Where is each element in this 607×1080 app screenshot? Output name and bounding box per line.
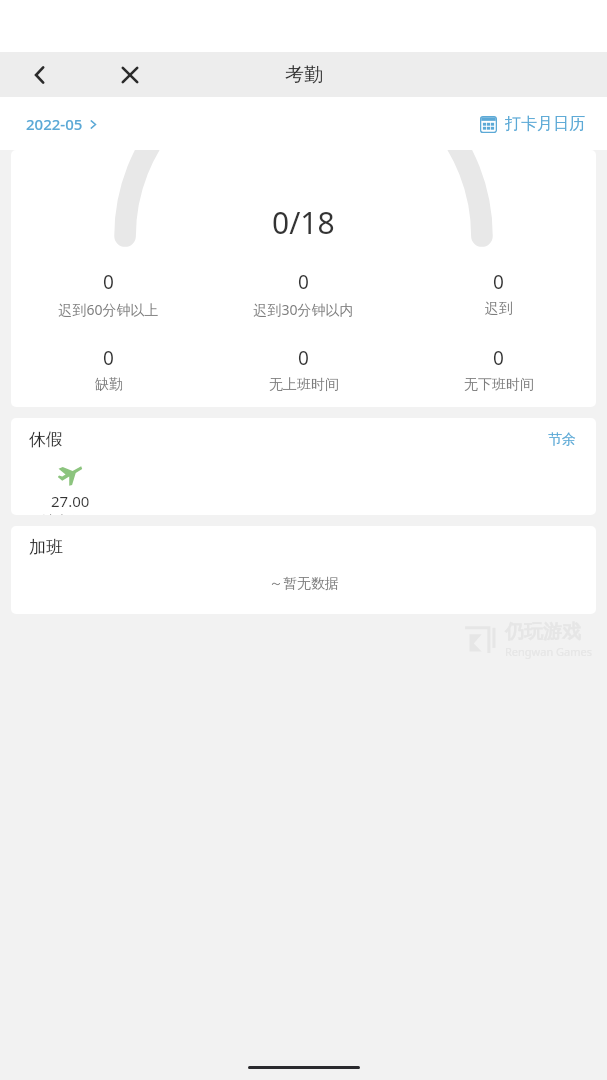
staticText: 无上班时间 <box>269 376 339 394</box>
staticText: 0 <box>103 269 114 295</box>
staticText: 休假 <box>29 429 63 450</box>
staticText: 迟到 <box>485 300 513 318</box>
button[interactable]: 2022-05 <box>20 108 104 140</box>
button[interactable]: 0 <box>11 269 206 319</box>
staticText: 2022-05 <box>26 114 83 134</box>
staticText: 打卡月日历 <box>505 114 585 134</box>
staticText: 仍玩游戏 <box>505 620 581 644</box>
staticText: 节余 <box>548 431 576 449</box>
staticText: 0 <box>298 345 309 371</box>
staticText: 0 <box>103 345 114 371</box>
staticText: ～暂无数据 <box>269 575 339 593</box>
staticText: 0 <box>493 345 504 371</box>
staticText: 迟到30分钟以内 <box>253 300 354 319</box>
staticText: 法定年假 <box>42 513 98 515</box>
button[interactable]: 0 <box>401 269 596 318</box>
button[interactable]: 0 <box>206 269 401 319</box>
staticText: 无下班时间 <box>464 376 534 394</box>
button[interactable]: Back <box>20 55 60 95</box>
staticText: 缺勤 <box>95 376 123 394</box>
staticText: 考勤 <box>285 63 323 87</box>
button[interactable]: 27.00 <box>35 461 105 515</box>
staticText: 0 <box>493 269 504 295</box>
button[interactable]: 0 <box>11 345 206 394</box>
button[interactable]: 0 <box>206 345 401 394</box>
staticText: 0 <box>298 269 309 295</box>
staticText: 0/18 <box>272 202 335 243</box>
staticText: 27.00 <box>51 491 90 511</box>
button[interactable]: Close <box>110 55 150 95</box>
staticText: 加班 <box>29 537 63 558</box>
staticText: 迟到60分钟以上 <box>58 300 159 319</box>
button[interactable]: 打卡月日历 <box>474 108 591 140</box>
button[interactable]: 0 <box>401 345 596 394</box>
button[interactable]: 节余 <box>544 429 580 451</box>
staticText: Rengwan Games <box>505 644 593 659</box>
